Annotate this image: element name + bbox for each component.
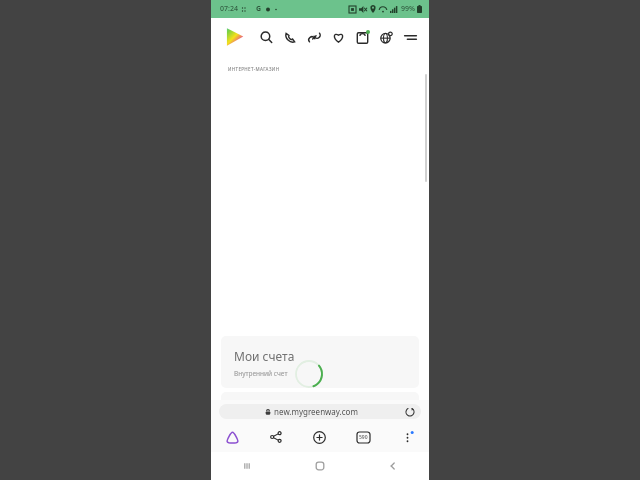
staticText: 99% (401, 4, 415, 14)
staticText: 590 (359, 434, 368, 441)
button[interactable]: Share (254, 422, 297, 452)
staticText: 07:24 (220, 4, 238, 14)
button[interactable]: More options (385, 422, 429, 452)
staticText: G (256, 4, 262, 14)
button[interactable]: Back (356, 452, 429, 480)
button[interactable]: Cart (353, 28, 371, 46)
button[interactable]: new.mygreenway.com (219, 404, 421, 419)
staticText: Внутренний счет (234, 369, 288, 378)
button[interactable]: Recents (211, 452, 283, 480)
staticText: ИНТЕРНЕТ-МАГАЗИН (228, 66, 280, 72)
staticText: Мои счета (234, 348, 295, 364)
button[interactable]: Call (281, 28, 299, 46)
button[interactable]: Samsung Internet (211, 422, 254, 452)
button[interactable]: Language (377, 28, 395, 46)
button[interactable]: Reload (404, 406, 415, 417)
button[interactable]: New tab (297, 422, 341, 452)
button[interactable]: Search (257, 28, 275, 46)
button[interactable]: Greenway logo (221, 24, 247, 50)
button[interactable]: Menu (401, 28, 419, 46)
button[interactable]: Favorites (329, 28, 347, 46)
staticText: new.mygreenway.com (274, 406, 358, 417)
button[interactable]: Tabs (341, 422, 385, 452)
button[interactable]: Home (283, 452, 356, 480)
button[interactable]: Мои счета (221, 336, 419, 388)
button[interactable]: Link (305, 28, 323, 46)
